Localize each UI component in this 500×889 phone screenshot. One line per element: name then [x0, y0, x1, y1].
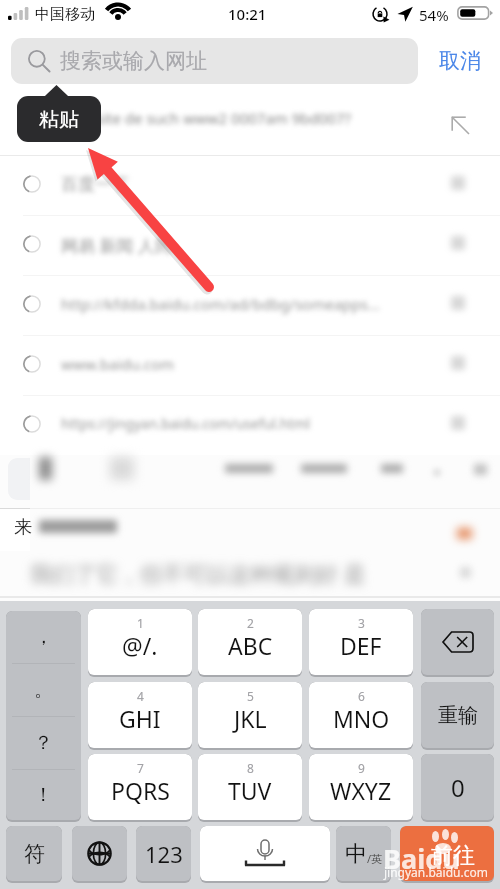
staticText: 重输 [438, 703, 478, 728]
staticText: @/. [122, 630, 158, 661]
staticText: 10:21 [228, 4, 267, 24]
staticText: https://jingyan.baidu.com/useful.html [61, 414, 311, 433]
staticText: 54% [419, 5, 449, 25]
button[interactable]: 1 [88, 609, 192, 677]
staticText: DEF [340, 630, 382, 661]
button[interactable]: 4 [88, 682, 192, 750]
staticText: /英 [367, 851, 383, 866]
button[interactable]: 8 [198, 754, 302, 822]
staticText: 4 [137, 688, 144, 704]
button[interactable]: 重输 [421, 682, 494, 750]
staticText: 3 [358, 615, 365, 631]
staticText: TUV [228, 775, 272, 806]
staticText: 1 [137, 615, 144, 631]
staticText: 8 [247, 760, 254, 776]
button[interactable]: 符 [6, 826, 62, 883]
staticText: 来 [14, 516, 32, 539]
button[interactable]: 123 [136, 826, 191, 883]
staticText: WXYZ [330, 775, 392, 806]
staticText: GHI [119, 703, 161, 734]
staticText: jingyan.baidu.com [384, 864, 488, 880]
button[interactable]: 中 [336, 826, 391, 883]
staticText: 123 [145, 839, 183, 869]
staticText: site de such www2 0007am 9bd007? [96, 108, 352, 128]
button[interactable]: ， [6, 611, 81, 820]
button[interactable]: 空格 [200, 826, 330, 883]
staticText: 粘贴 [39, 107, 79, 132]
staticText: ABC [228, 630, 273, 661]
staticText: 我们了它，但不可以这种规则好 是 [30, 558, 366, 588]
button[interactable]: 退格 [421, 609, 494, 677]
staticText: 2 [247, 615, 254, 631]
staticText: 网易 新闻 人民 [61, 234, 172, 257]
staticText: 中 [345, 840, 367, 868]
button[interactable]: 7 [88, 754, 192, 822]
staticText: 前往 [431, 842, 475, 870]
staticText: 6 [358, 688, 365, 704]
staticText: http://kfdda.baidu.com/ad/bdbg/someapps… [61, 294, 380, 314]
staticText: PQRS [111, 775, 170, 806]
button[interactable]: 6 [309, 682, 413, 750]
button[interactable]: 前往 [400, 826, 494, 883]
staticText: 取消 [439, 48, 481, 74]
button[interactable]: 搜索或输入网址 [11, 38, 418, 84]
button[interactable]: 取消 [429, 38, 491, 84]
staticText: www.baidu.com [61, 354, 175, 374]
button[interactable]: 9 [309, 754, 413, 822]
button[interactable]: 粘贴 [17, 96, 101, 142]
staticText: JKL [234, 703, 267, 734]
button[interactable]: 0 [421, 754, 494, 822]
staticText: 中国移动 [35, 5, 95, 24]
staticText: 。 [34, 678, 53, 702]
staticText: 符 [24, 841, 45, 867]
staticText: MNO [333, 703, 390, 734]
staticText: ？ [34, 731, 53, 755]
staticText: Baidu [383, 840, 460, 877]
staticText: 搜索或输入网址 [60, 48, 207, 74]
staticText: 7 [137, 760, 144, 776]
staticText: 9 [358, 760, 365, 776]
staticText: ！ [34, 783, 53, 807]
button[interactable]: 3 [309, 609, 413, 677]
button[interactable]: 2 [198, 609, 302, 677]
staticText: ， [34, 625, 53, 649]
staticText: 5 [247, 688, 254, 704]
staticText: 0 [451, 771, 465, 804]
staticText: 百度一下 [61, 174, 129, 195]
button[interactable]: 5 [198, 682, 302, 750]
button[interactable]: 切换输入法 [72, 826, 127, 883]
